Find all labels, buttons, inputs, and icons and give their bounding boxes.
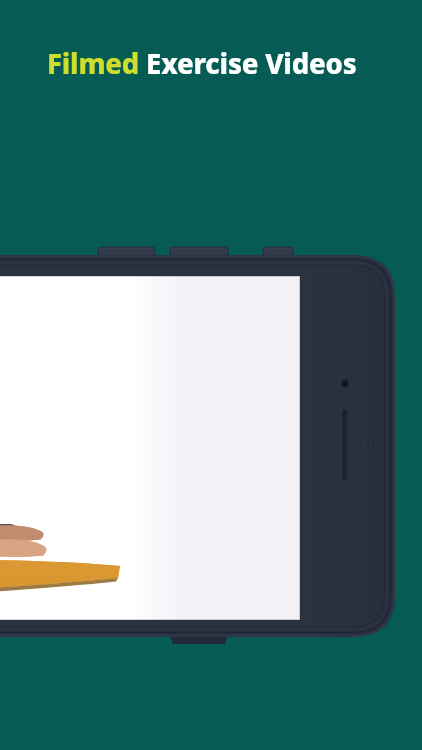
staticText: Filmed Exercise Videos: [47, 45, 357, 82]
button[interactable]: Phone showing a filmed exercise video: [0, 0, 422, 750]
button[interactable]: Filmed Exercise Videos: [47, 45, 357, 82]
